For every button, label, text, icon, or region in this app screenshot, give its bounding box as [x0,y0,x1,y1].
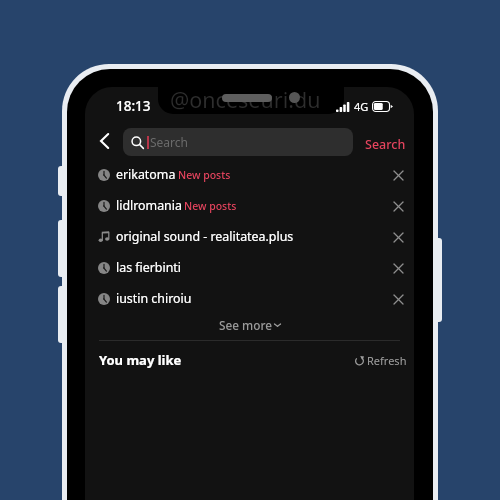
button[interactable]: Remove [386,225,410,249]
staticText: erikatoma [116,166,176,183]
staticText: iustin chiroiu [116,290,192,307]
staticText: original sound - realitatea.plus [116,228,294,245]
staticText: New posts [184,199,237,213]
staticText: lidlromania [116,197,182,214]
button[interactable]: erikatoma [85,159,414,190]
staticText: New posts [178,168,231,182]
staticText: 4G [354,99,369,114]
button[interactable]: Remove [386,256,410,280]
button[interactable]: See more [209,314,291,334]
button[interactable]: original sound - realitatea.plus [85,221,414,252]
staticText: See more [219,317,273,331]
staticText: @onceseuri.du [170,87,321,114]
staticText: Search [365,136,406,153]
button[interactable]: Remove [386,194,410,218]
staticText: 18:13 [116,97,151,115]
button[interactable]: Remove [386,287,410,311]
button[interactable]: las fierbinti [85,252,414,283]
staticText: Search [150,134,188,150]
button[interactable]: Refresh [351,350,411,371]
staticText: las fierbinti [116,259,182,276]
staticText: Refresh [367,353,407,368]
staticText: You may like [99,351,182,369]
button[interactable]: Search [357,131,414,158]
button[interactable]: Back [90,127,118,155]
button[interactable]: Remove [386,163,410,187]
button[interactable]: lidlromania [85,190,414,221]
button[interactable]: Search [123,128,353,156]
button[interactable]: iustin chiroiu [85,283,414,314]
